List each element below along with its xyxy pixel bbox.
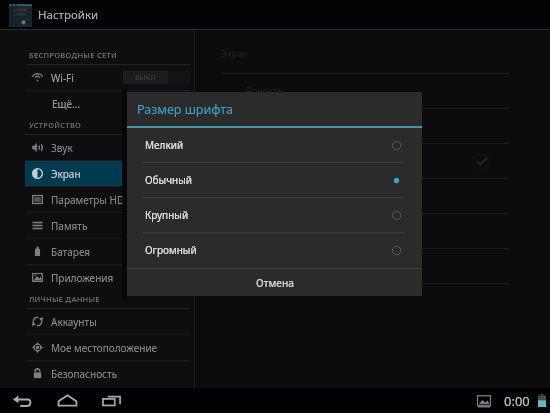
button[interactable]: Приложения — [25, 265, 191, 290]
staticText: Звук — [51, 141, 73, 155]
staticText: Отмена — [256, 276, 294, 290]
staticText: Батарея — [51, 245, 91, 259]
button[interactable]: Аккаунты — [25, 309, 191, 334]
button[interactable]: Крупный — [127, 198, 422, 232]
staticText: Огромный — [145, 243, 197, 257]
staticText: Настройки — [38, 7, 99, 23]
button[interactable]: Обои — [195, 109, 510, 143]
staticText: 0:00 — [504, 392, 530, 410]
staticText: Мое местоположение — [51, 341, 158, 355]
button[interactable]: Settings app — [9, 4, 32, 27]
button[interactable]: Back — [7, 388, 37, 413]
staticText: Спящий режим — [245, 189, 321, 203]
button[interactable]: Отмена — [127, 269, 422, 296]
button[interactable]: Обычный — [127, 163, 422, 197]
button[interactable]: Огромный — [127, 233, 422, 267]
staticText: БЕСПРОВОДНЫЕ СЕТИ — [29, 50, 118, 60]
staticText: Обои — [245, 119, 271, 133]
staticText: Экран — [221, 47, 249, 59]
staticText: Ещё... — [52, 97, 81, 111]
button[interactable]: Мелкий — [127, 128, 422, 162]
staticText: Яркость — [245, 84, 284, 98]
button[interactable]: Home — [52, 388, 82, 413]
staticText: Размер шрифта — [245, 224, 322, 238]
button[interactable]: Безопасность — [25, 361, 191, 386]
button[interactable]: Яркость — [195, 74, 510, 108]
staticText: Мелкий — [145, 138, 184, 152]
button[interactable]: Recent apps — [96, 388, 126, 413]
staticText: Размер шрифта — [137, 101, 234, 118]
staticText: Параметры HDMI — [51, 193, 137, 207]
button[interactable]: ВЫКЛ — [123, 71, 190, 84]
button[interactable]: Wi-Fi — [25, 65, 191, 90]
staticText: УСТРОЙСТВО — [29, 120, 82, 130]
staticText: Автоповорот экрана — [245, 154, 344, 168]
staticText: ВЫКЛ — [135, 73, 156, 83]
staticText: Приложения — [51, 271, 114, 285]
button[interactable]: Автоповорот экрана — [195, 144, 510, 178]
staticText: Память — [51, 219, 88, 233]
button[interactable]: Батарея — [25, 239, 191, 264]
button[interactable]: Беспроводной монитор — [195, 249, 510, 283]
staticText: Крупный — [145, 208, 189, 222]
button[interactable]: Параметры HDMI — [25, 187, 191, 212]
button[interactable]: Память — [25, 213, 191, 238]
button[interactable]: Ещё... — [25, 91, 191, 116]
staticText: Безопасность — [51, 367, 118, 381]
button[interactable]: Размер шрифта — [195, 214, 510, 248]
staticText: Беспроводной монитор — [245, 259, 361, 273]
staticText: Обычный — [145, 173, 192, 187]
button[interactable]: Экран — [25, 161, 191, 186]
button[interactable]: Звук — [25, 135, 191, 160]
staticText: ЛИЧНЫЕ ДАННЫЕ — [29, 294, 100, 304]
button[interactable]: Спящий режим — [195, 179, 510, 213]
button[interactable]: Мое местоположение — [25, 335, 191, 360]
staticText: Wi-Fi — [51, 71, 74, 85]
staticText: Экран — [51, 167, 81, 181]
button[interactable]: Screenshot — [474, 390, 494, 412]
staticText: Аккаунты — [51, 315, 97, 329]
